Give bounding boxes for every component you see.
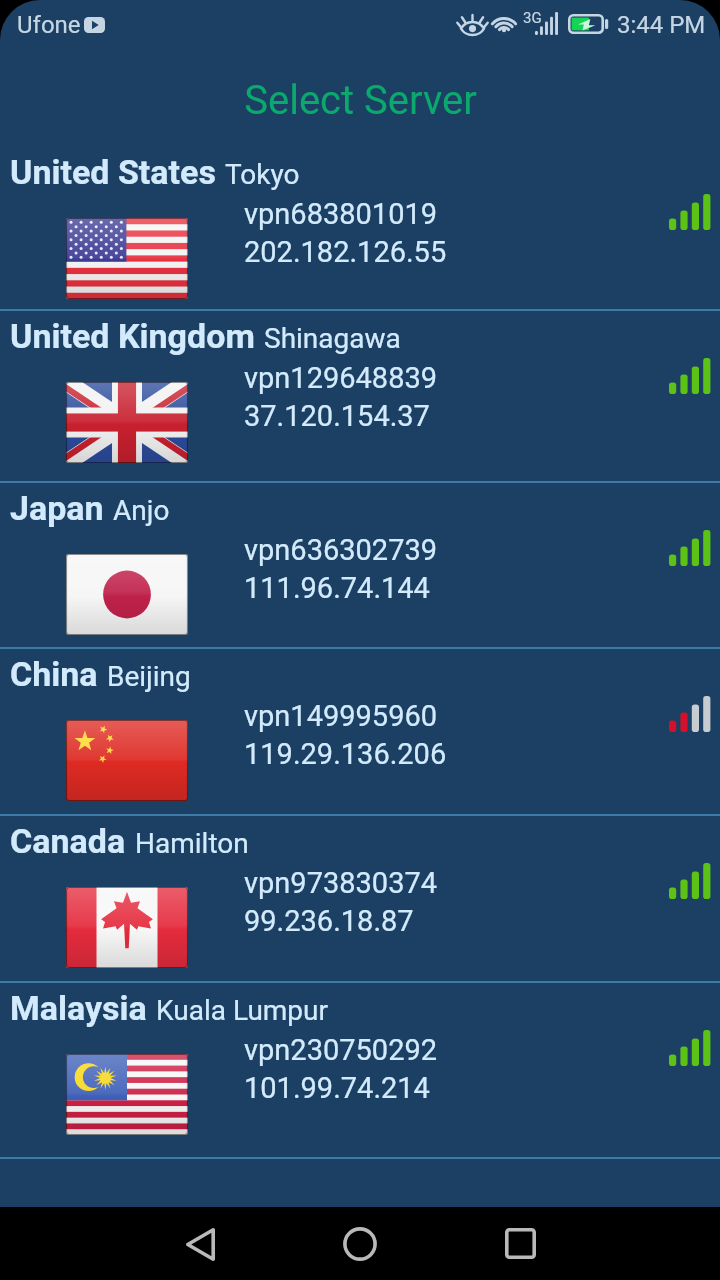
staticText: Japan: [10, 488, 104, 528]
staticText: Tokyo: [225, 158, 300, 191]
button[interactable]: United States: [0, 147, 720, 311]
staticText: 119.29.136.206: [244, 737, 447, 771]
staticText: 3:44 PM: [617, 11, 706, 39]
staticText: Beijing: [107, 660, 191, 693]
staticText: vpn636302739: [244, 533, 438, 567]
staticText: 37.120.154.37: [244, 399, 430, 433]
button[interactable]: Canada: [0, 816, 720, 983]
staticText: Hamilton: [135, 827, 249, 860]
staticText: 101.99.74.214: [244, 1071, 430, 1105]
staticText: vpn230750292: [244, 1033, 438, 1067]
staticText: Kuala Lumpur: [156, 994, 329, 1027]
staticText: Select Server: [244, 77, 477, 124]
staticText: Anjo: [113, 494, 170, 527]
staticText: United Kingdom: [10, 316, 255, 356]
staticText: 3G: [523, 9, 542, 27]
staticText: vpn149995960: [244, 699, 438, 733]
button[interactable]: Back: [146, 1207, 254, 1280]
button[interactable]: Japan: [0, 483, 720, 649]
staticText: Shinagawa: [264, 322, 401, 355]
button[interactable]: United Kingdom: [0, 311, 720, 483]
staticText: Ufone: [17, 11, 81, 39]
staticText: 99.236.18.87: [244, 904, 414, 938]
staticText: vpn973830374: [244, 866, 438, 900]
staticText: Canada: [10, 821, 126, 861]
staticText: 111.96.74.144: [244, 571, 430, 605]
staticText: vpn683801019: [244, 197, 438, 231]
staticText: China: [10, 654, 98, 694]
button[interactable]: China: [0, 649, 720, 816]
staticText: United States: [10, 152, 216, 192]
staticText: Malaysia: [10, 988, 147, 1028]
button[interactable]: Home: [306, 1207, 414, 1280]
button[interactable]: Recent apps: [466, 1207, 574, 1280]
staticText: vpn129648839: [244, 361, 438, 395]
button[interactable]: Malaysia: [0, 983, 720, 1159]
staticText: 202.182.126.55: [244, 235, 447, 269]
